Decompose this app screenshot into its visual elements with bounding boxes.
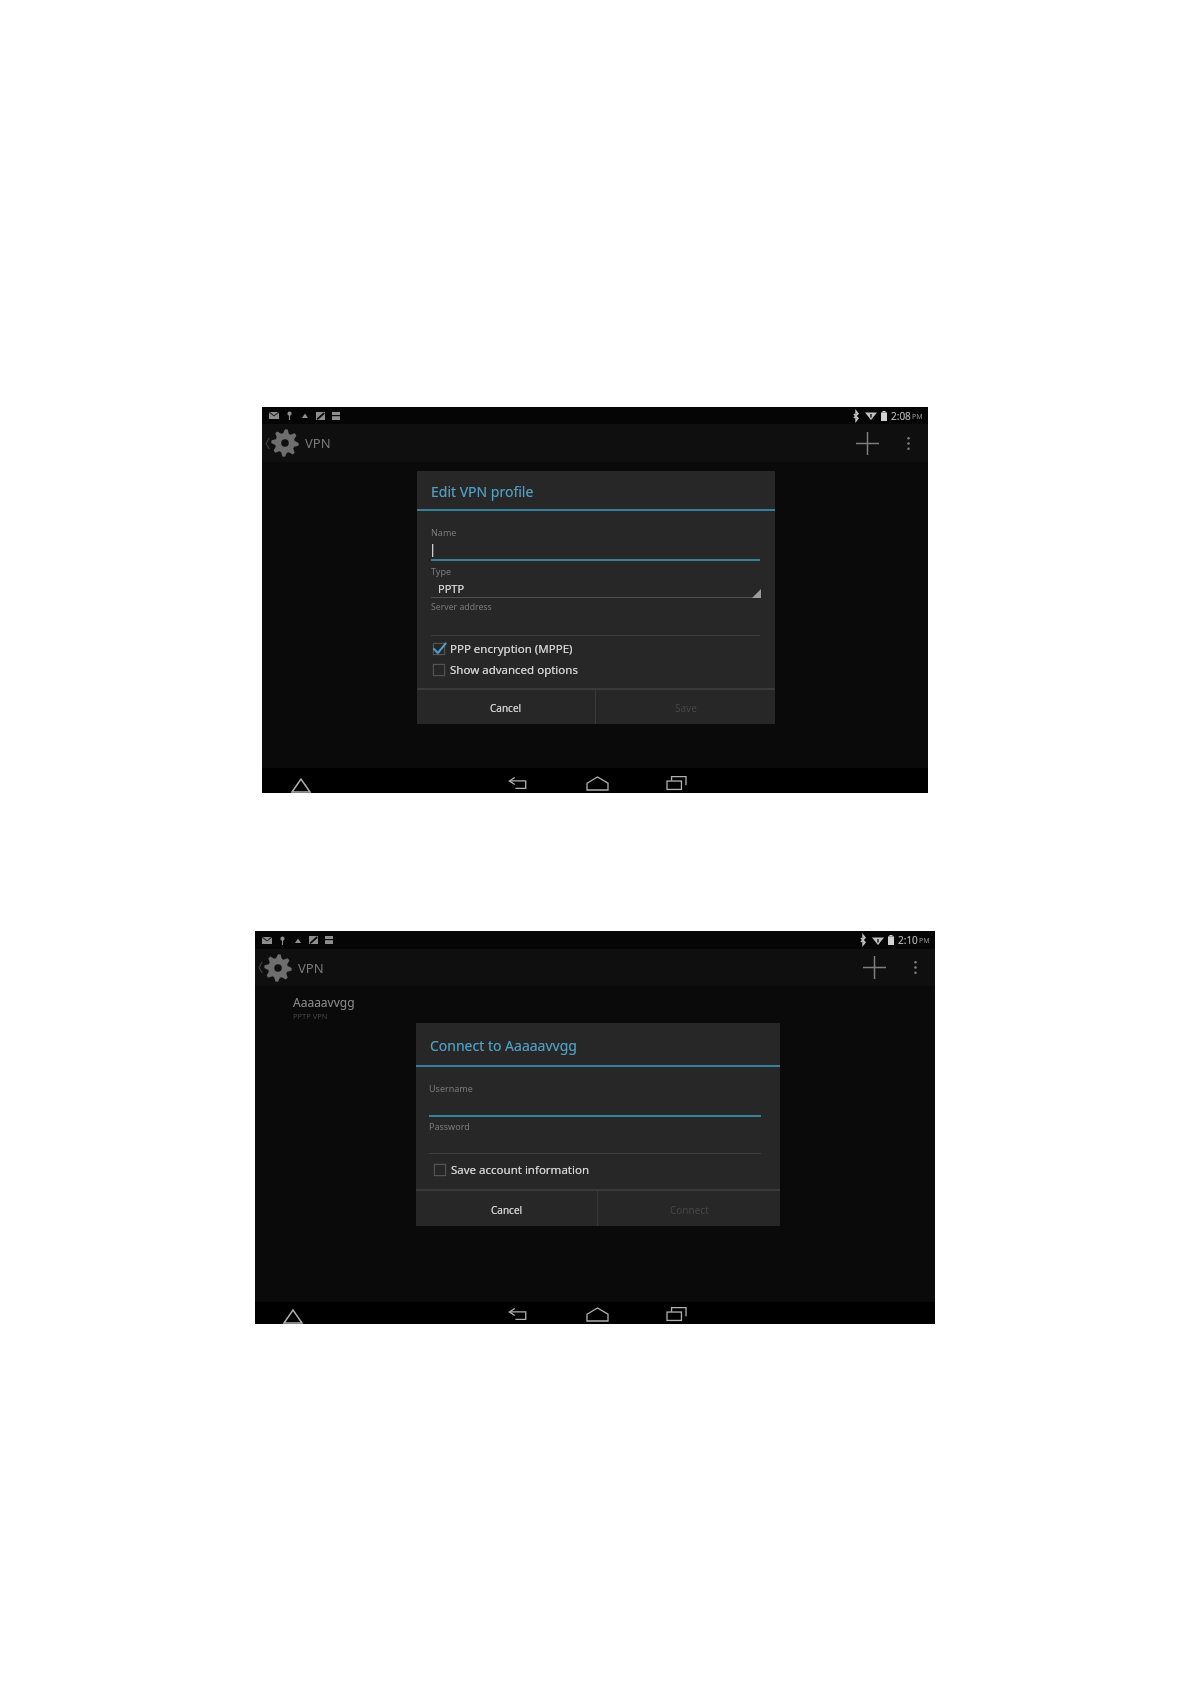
staticText: PM [912, 412, 923, 422]
staticText: PPP encryption (MPPE) [450, 641, 573, 657]
button[interactable]: Cancel [416, 1191, 597, 1226]
staticText: PPTP [438, 581, 465, 596]
staticText: Show advanced options [450, 662, 578, 678]
button[interactable]: Navigate up to Settings [262, 424, 337, 462]
button[interactable]: More options [896, 949, 935, 986]
button[interactable]: Home [580, 775, 614, 791]
staticText: Edit VPN profile [431, 482, 534, 501]
button[interactable]: Navigate up to Settings [255, 949, 330, 986]
staticText: Save account information [451, 1162, 590, 1178]
staticText: Name [431, 526, 457, 538]
button[interactable]: More options [889, 424, 928, 462]
button[interactable]: Cancel [417, 690, 595, 724]
staticText: Aaaaavvgg [293, 994, 355, 1010]
staticText: VPN [298, 959, 324, 977]
staticText: PM [919, 936, 930, 946]
button[interactable]: Up [288, 770, 314, 792]
button[interactable]: Home [580, 1306, 614, 1322]
staticText: Cancel [491, 1203, 523, 1217]
staticText: Password [429, 1120, 470, 1132]
button[interactable]: PPP encryption (MPPE) [432, 639, 573, 659]
staticText: 2:08 [891, 409, 911, 423]
staticText: Connect to Aaaaavvgg [430, 1036, 577, 1055]
staticText: 2:10 [898, 933, 918, 947]
staticText: PPTP VPN [293, 1011, 328, 1021]
staticText: Type [431, 565, 452, 577]
staticText: VPN [305, 434, 331, 452]
button[interactable]: Back [501, 1306, 535, 1322]
button[interactable]: Recent apps [659, 775, 693, 791]
button[interactable]: Save account information [433, 1160, 590, 1180]
staticText: Save [675, 701, 697, 715]
button[interactable]: Back [501, 775, 535, 791]
staticText: Connect [670, 1203, 709, 1217]
staticText: Server address [431, 601, 492, 613]
button[interactable]: Recent apps [659, 1306, 693, 1322]
staticText: Username [429, 1082, 473, 1094]
button[interactable]: Add VPN profile [852, 949, 896, 986]
staticText: Cancel [490, 701, 522, 715]
button[interactable]: Add VPN profile [845, 424, 889, 462]
button[interactable]: Show advanced options [432, 660, 578, 680]
button[interactable]: Up [280, 1304, 306, 1323]
